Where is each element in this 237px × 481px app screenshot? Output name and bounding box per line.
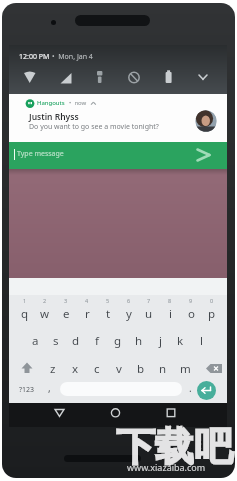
staticText: o xyxy=(188,306,195,322)
staticText: m xyxy=(180,361,191,377)
button[interactable]: y xyxy=(119,303,139,325)
button[interactable]: u xyxy=(139,303,159,325)
button[interactable]: f xyxy=(87,330,107,352)
staticText: 8 xyxy=(168,297,172,304)
staticText: 0 xyxy=(210,297,214,304)
staticText: k xyxy=(177,333,184,349)
staticText: h xyxy=(135,333,143,349)
button[interactable] xyxy=(48,402,71,424)
button[interactable]: j xyxy=(150,330,170,352)
staticText: x xyxy=(72,361,79,377)
staticText: c xyxy=(94,361,100,377)
staticText: f xyxy=(95,333,99,349)
staticText: b xyxy=(137,361,145,377)
staticText: s xyxy=(53,333,59,349)
button[interactable]: z xyxy=(43,358,63,380)
button[interactable]: o xyxy=(181,303,201,325)
button[interactable]: b xyxy=(131,358,151,380)
staticText: j xyxy=(159,333,162,349)
button[interactable]: d xyxy=(66,330,86,352)
button[interactable]: v xyxy=(109,358,129,380)
button[interactable]: q xyxy=(15,303,35,325)
staticText: p xyxy=(208,306,216,322)
button[interactable]: r xyxy=(77,303,97,325)
staticText: 7 xyxy=(147,297,151,304)
button[interactable]: t xyxy=(98,303,118,325)
staticText: d xyxy=(72,333,80,349)
staticText: 9 xyxy=(189,297,193,304)
button[interactable]: n xyxy=(153,358,173,380)
button[interactable]: m xyxy=(175,358,195,380)
button[interactable] xyxy=(205,358,227,379)
staticText: 6 xyxy=(127,297,131,304)
staticText: u xyxy=(145,306,153,322)
staticText: Do you want to go see a movie tonight? xyxy=(29,122,159,132)
staticText: • now xyxy=(69,99,87,107)
button[interactable]: . xyxy=(180,377,200,399)
button[interactable]: c xyxy=(87,358,107,380)
button[interactable]: e xyxy=(56,303,76,325)
staticText: 下载吧 xyxy=(116,422,233,471)
staticText: 1 xyxy=(23,297,27,304)
button[interactable]: ?123 xyxy=(13,380,41,399)
staticText: • Mon, Jan 4 xyxy=(52,52,93,62)
button[interactable] xyxy=(9,94,227,142)
button[interactable]: h xyxy=(129,330,149,352)
staticText: r xyxy=(85,306,90,322)
button[interactable]: l xyxy=(191,330,211,352)
staticText: Justin Rhyss xyxy=(29,111,79,123)
staticText: n xyxy=(159,361,167,377)
staticText: 4 xyxy=(85,297,89,304)
button[interactable]: s xyxy=(46,330,66,352)
button[interactable]: a xyxy=(25,330,45,352)
staticText: 3 xyxy=(64,297,68,304)
staticText: . xyxy=(189,381,192,395)
button[interactable] xyxy=(197,381,216,400)
button[interactable]: k xyxy=(170,330,190,352)
button[interactable]: , xyxy=(39,377,59,399)
staticText: z xyxy=(50,361,56,377)
staticText: , xyxy=(48,381,51,395)
staticText: q xyxy=(21,306,29,322)
staticText: y xyxy=(126,306,132,322)
staticText: v xyxy=(116,361,122,377)
staticText: 5 xyxy=(106,297,110,304)
button[interactable]: w xyxy=(35,303,55,325)
staticText: Hangouts xyxy=(37,99,65,107)
button[interactable]: g xyxy=(108,330,128,352)
staticText: l xyxy=(200,333,203,349)
staticText: w xyxy=(40,306,50,322)
button[interactable] xyxy=(160,402,183,424)
button[interactable]: x xyxy=(65,358,85,380)
staticText: i xyxy=(169,306,172,322)
button[interactable]: p xyxy=(202,303,222,325)
staticText: t xyxy=(106,306,111,322)
staticText: Type message xyxy=(17,149,64,159)
staticText: g xyxy=(114,333,122,349)
staticText: a xyxy=(32,333,39,349)
staticText: e xyxy=(63,306,70,322)
staticText: ?123 xyxy=(19,385,35,395)
button[interactable] xyxy=(104,402,127,424)
staticText: www.xiazaiba.com xyxy=(127,461,206,473)
button[interactable] xyxy=(9,142,227,169)
staticText: 2 xyxy=(43,297,47,304)
button[interactable] xyxy=(17,358,37,379)
staticText: 12:00 PM xyxy=(19,52,50,62)
button[interactable]: i xyxy=(160,303,180,325)
